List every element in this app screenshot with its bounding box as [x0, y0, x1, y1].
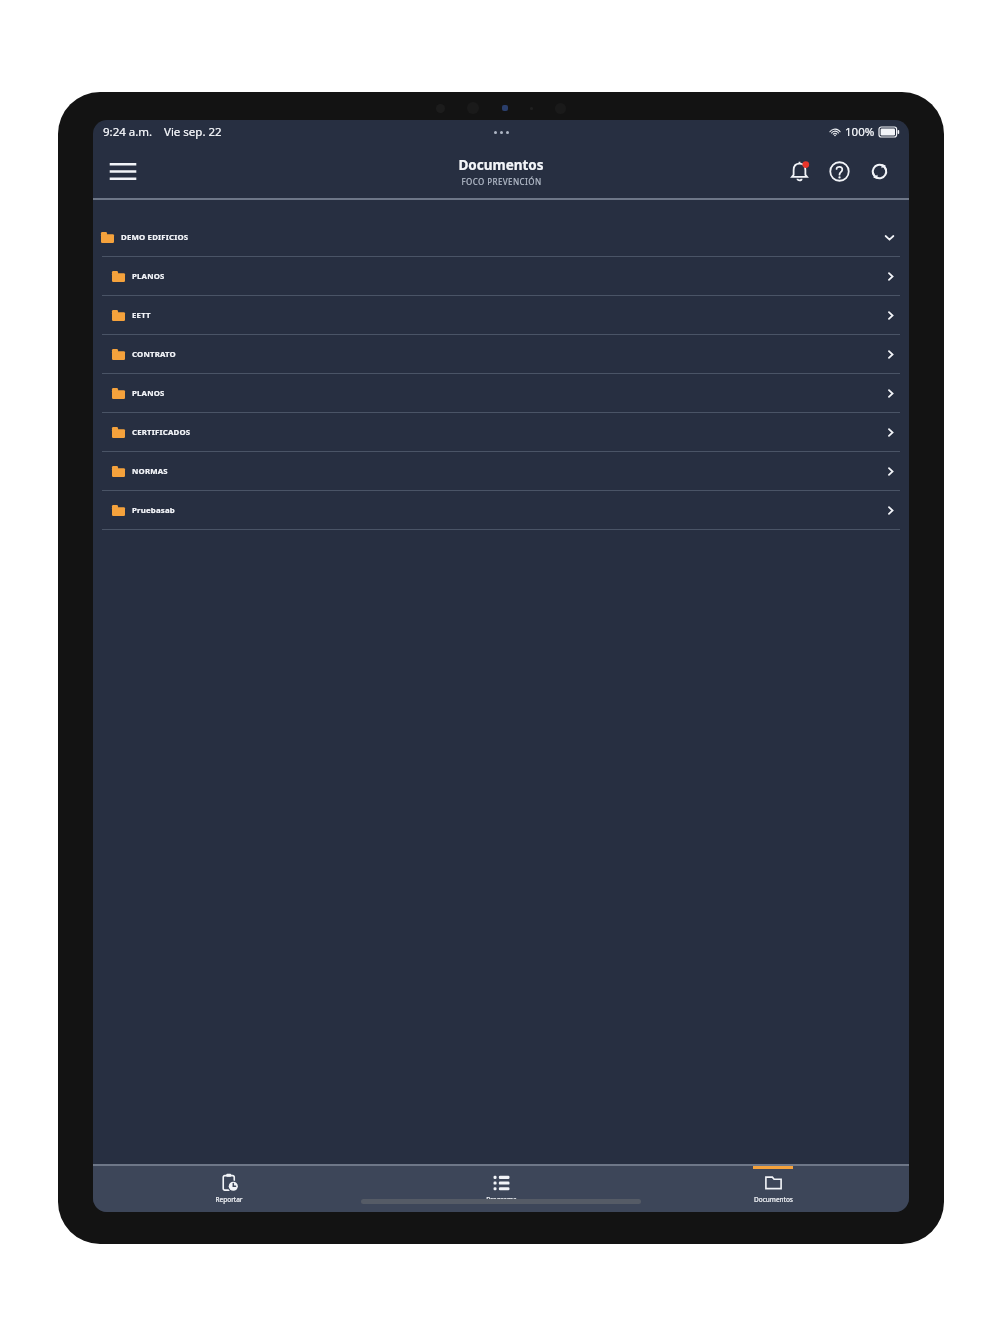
staticText: Pruebasab	[132, 505, 175, 516]
staticText: PLANOS	[132, 388, 165, 399]
button[interactable]: CONTRATO	[93, 335, 909, 373]
button[interactable]: Sync	[861, 153, 897, 189]
button[interactable]: Menu	[101, 149, 145, 193]
staticText: NORMAS	[132, 466, 168, 477]
staticText: EETT	[132, 310, 151, 321]
button[interactable]: Programa	[365, 1166, 637, 1212]
staticText: 100%	[845, 124, 875, 140]
staticText: PLANOS	[132, 271, 165, 282]
staticText: Programa	[486, 1195, 517, 1204]
button[interactable]: EETT	[93, 296, 909, 334]
staticText: CERTIFICADOS	[132, 427, 191, 438]
button[interactable]: Documentos	[637, 1166, 909, 1212]
staticText: Vie sep. 22	[164, 124, 222, 140]
staticText: Reportar	[215, 1195, 243, 1204]
button[interactable]: Pruebasab	[93, 491, 909, 529]
button[interactable]: PLANOS	[93, 257, 909, 295]
button[interactable]: PLANOS	[93, 374, 909, 412]
staticText: Documentos	[458, 156, 544, 174]
button[interactable]: Notifications	[781, 153, 817, 189]
staticText: 9:24 a.m.	[103, 124, 153, 140]
staticText: FOCO PREVENCIÓN	[461, 176, 542, 187]
staticText: DEMO EDIFICIOS	[121, 232, 189, 243]
button[interactable]: Help	[821, 153, 857, 189]
staticText: Documentos	[754, 1195, 793, 1204]
button[interactable]: CERTIFICADOS	[93, 413, 909, 451]
staticText: CONTRATO	[132, 349, 176, 360]
button[interactable]: Reportar	[93, 1166, 365, 1212]
button[interactable]: NORMAS	[93, 452, 909, 490]
button[interactable]: DEMO EDIFICIOS	[93, 218, 909, 256]
